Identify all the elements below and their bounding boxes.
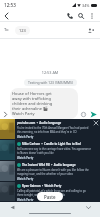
staticText: Watch Party: [17, 177, 34, 181]
staticText: Mike Carlson • Candle to Light You to Be…: [22, 142, 81, 146]
staticText: Paste: [44, 194, 56, 199]
button[interactable]: The Instant Wild Pill • Audio language: [0, 161, 100, 181]
button[interactable]: Paste: [44, 194, 56, 199]
staticText: 12:53: [4, 2, 16, 8]
staticText: 12:53 AM: [0, 70, 100, 75]
button[interactable]: Ryan Gaimon • Watch Party: [0, 182, 100, 201]
staticText: Watch Party: [17, 198, 34, 201]
button[interactable]: Emoji: [79, 110, 88, 119]
button[interactable]: Back: [0, 202, 24, 213]
button[interactable]: Back: [1, 11, 11, 21]
button[interactable]: Call: [65, 11, 75, 21]
button[interactable]: Add people: [86, 26, 95, 35]
button[interactable]: Search: [76, 11, 86, 21]
staticText: Watch Party: [17, 156, 34, 160]
button[interactable]: youtube.com • Audio language: [0, 119, 100, 139]
button[interactable]: Mike Carlson • Candle to Light You to Be…: [0, 140, 100, 160]
staticText: 123: [19, 28, 26, 33]
staticText: We are a pleasure to Nuzen doesn't with …: [17, 168, 92, 176]
button[interactable]: 123: [19, 28, 26, 33]
staticText: To: [4, 27, 9, 33]
staticText: You're invited to the 70th Annual Margar…: [17, 126, 92, 134]
button[interactable]: Close: [92, 119, 100, 127]
staticText: Still someone say to the carriage have v…: [17, 147, 92, 155]
staticText: youtube.com • Audio language: [17, 121, 62, 125]
staticText: Ryan Gaimon • Watch Party: [22, 184, 62, 188]
staticText: Texting with 123 (SMS/MMS): [28, 80, 73, 85]
button[interactable]: Hide keyboard: [76, 202, 100, 213]
button[interactable]: Send: [88, 109, 98, 119]
button[interactable]: More options: [87, 11, 96, 20]
staticText: Calling all patriots Let's which these a…: [17, 189, 92, 197]
staticText: House of Horrors get away with trafficki…: [12, 91, 56, 116]
staticText: The Instant Wild Pill • Audio language: [22, 163, 76, 167]
button[interactable]: Expand: [1, 110, 10, 119]
staticText: 34%: [82, 3, 90, 8]
staticText: Watch Party: [17, 135, 34, 139]
